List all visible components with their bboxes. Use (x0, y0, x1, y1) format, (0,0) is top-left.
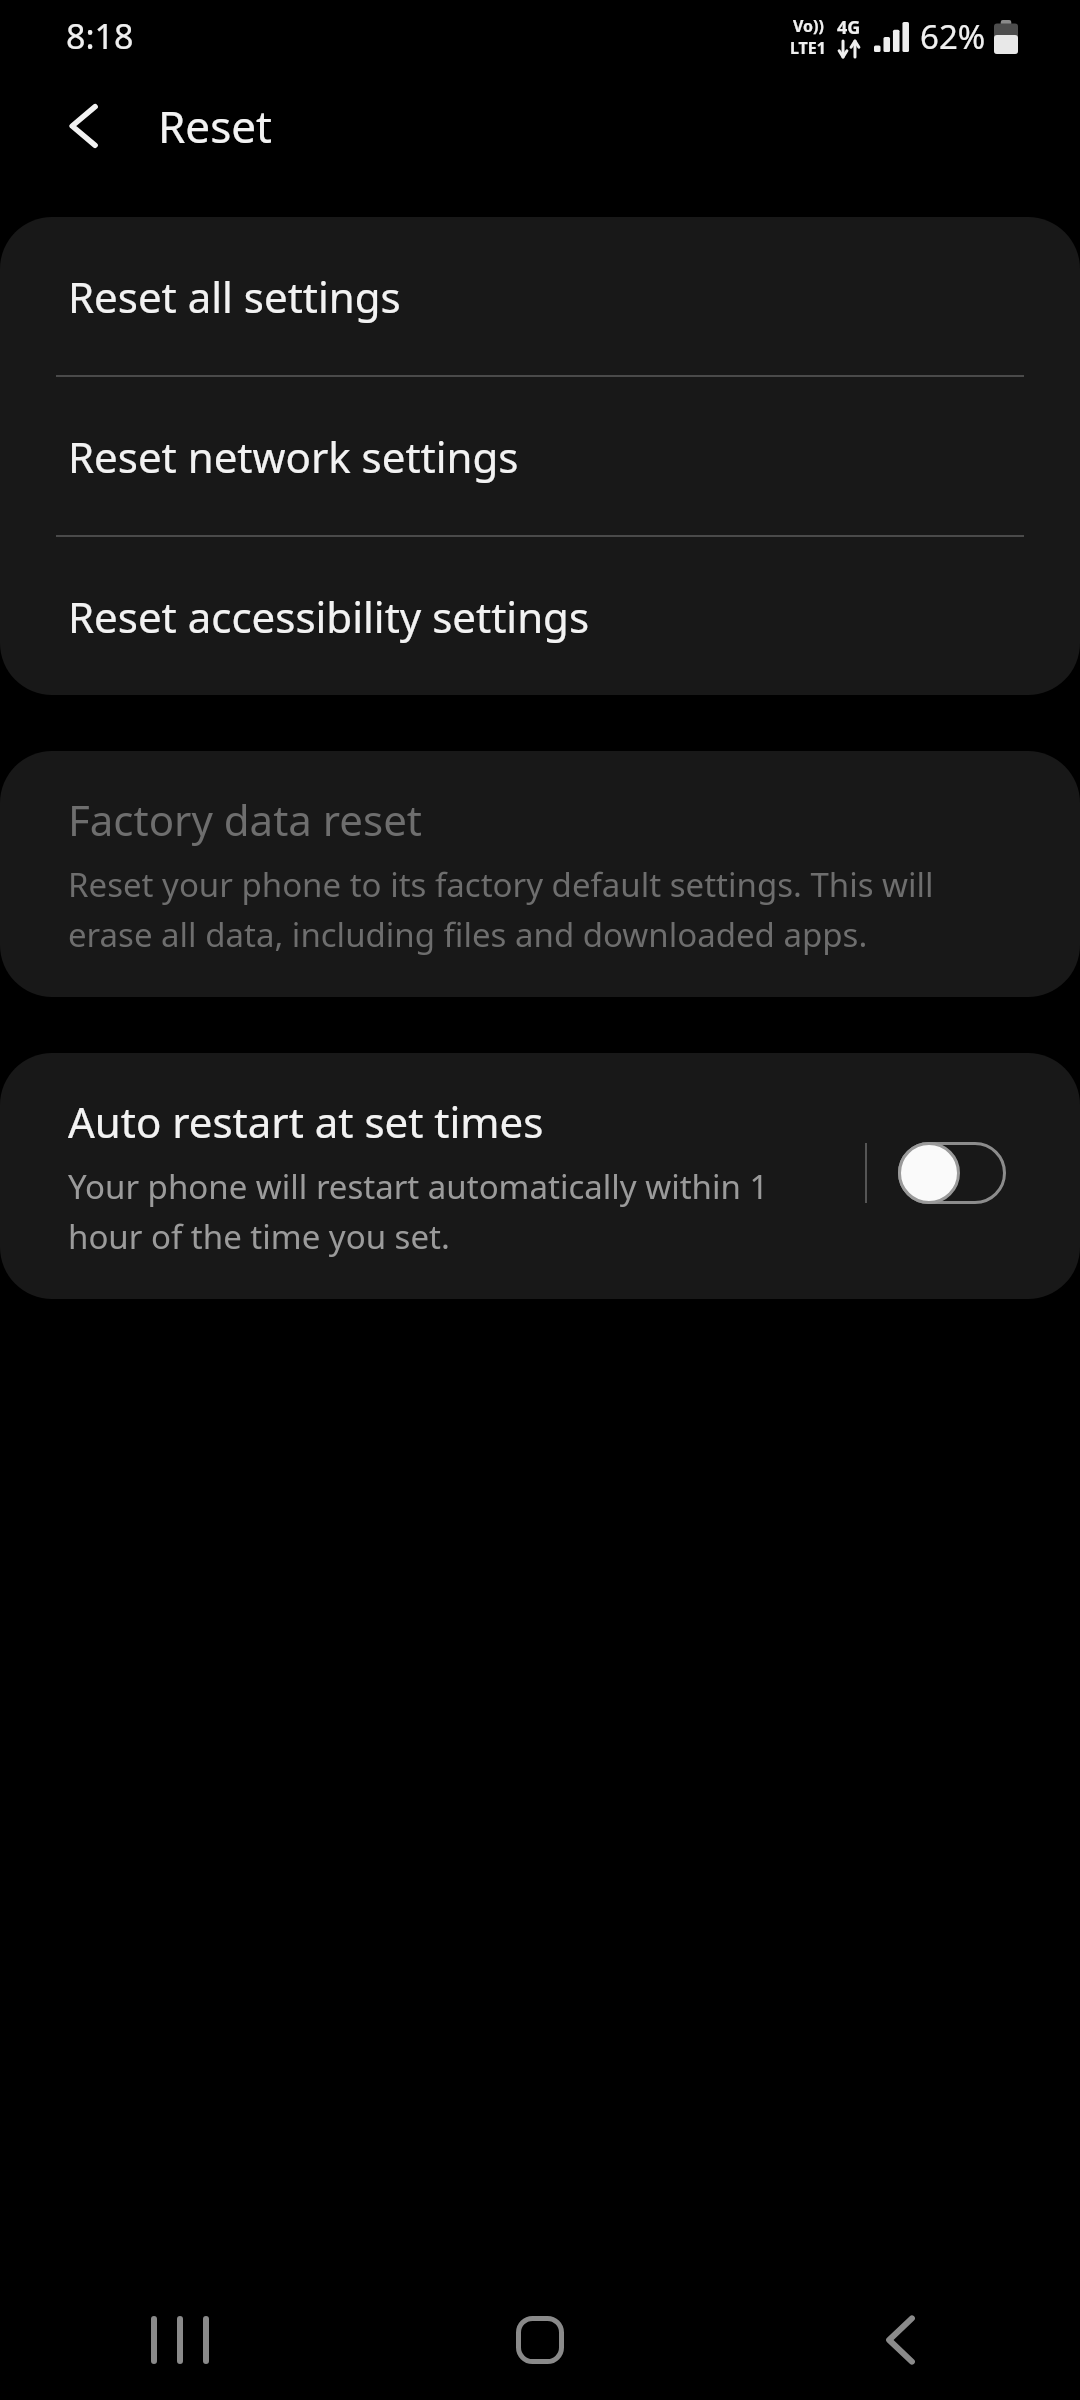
button[interactable]: Home (360, 2280, 720, 2400)
staticText: 8:18 (66, 13, 134, 59)
staticText: Factory data reset (68, 791, 422, 848)
staticText: Reset network settings (68, 428, 519, 485)
button[interactable]: Reset all settings (0, 217, 1080, 375)
staticText: Reset all settings (68, 268, 401, 325)
staticText: 4G (837, 15, 861, 40)
button[interactable]: Factory data reset (0, 751, 1080, 997)
button[interactable]: Back (38, 79, 132, 173)
button[interactable]: Auto restart at set times (0, 1053, 865, 1299)
staticText: LTE1 (790, 37, 826, 59)
button[interactable]: Auto restart at set times toggle (898, 1142, 1006, 1204)
button[interactable]: Reset accessibility settings (0, 537, 1080, 695)
staticText: Your phone will restart automatically wi… (68, 1164, 847, 1259)
staticText: Vo)) (793, 15, 824, 37)
staticText: Reset (158, 96, 272, 156)
staticText: Reset accessibility settings (68, 588, 590, 645)
staticText: 62% (920, 14, 986, 59)
button[interactable]: Back (720, 2280, 1080, 2400)
staticText: Reset your phone to its factory default … (68, 862, 1020, 957)
button[interactable]: Reset network settings (0, 377, 1080, 535)
button[interactable]: Recent apps (0, 2280, 360, 2400)
staticText: Auto restart at set times (68, 1093, 544, 1150)
